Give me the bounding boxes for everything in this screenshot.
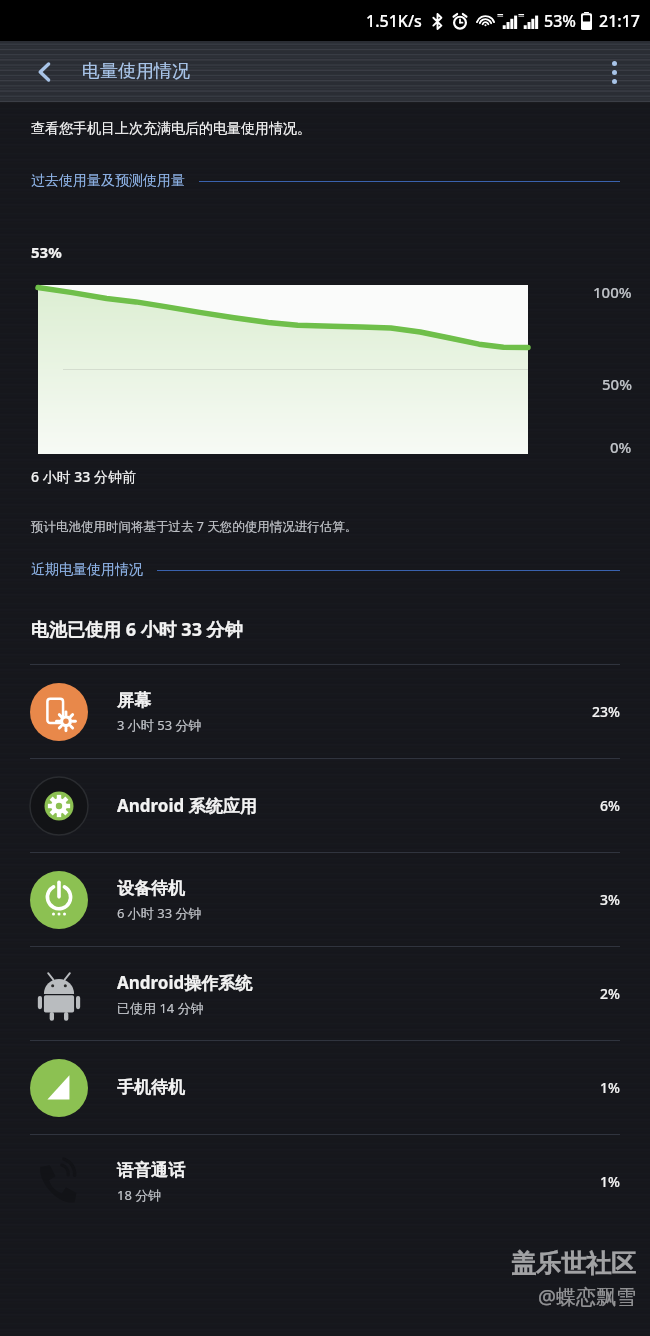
staticText: 2% xyxy=(600,984,620,1003)
staticText: 查看您手机目上次充满电后的电量使用情况。 xyxy=(31,120,311,138)
button[interactable]: 设备待机 xyxy=(0,853,650,946)
staticText: 设备待机 xyxy=(117,878,185,899)
staticText: 手机待机 xyxy=(117,1077,185,1098)
staticText: 电量使用情况 xyxy=(82,60,190,83)
staticText: 盖乐世社区 xyxy=(511,1248,636,1279)
staticText: Android 系统应用 xyxy=(117,794,257,817)
button[interactable]: Android 系统应用 xyxy=(0,759,650,852)
staticText: 3% xyxy=(600,890,620,909)
staticText: 1.51K/s xyxy=(366,10,422,32)
staticText: 预计电池使用时间将基于过去 7 天您的使用情况进行估算。 xyxy=(31,518,358,535)
staticText: 6% xyxy=(600,796,620,815)
staticText: 语音通话 xyxy=(117,1160,185,1181)
staticText: 21:17 xyxy=(599,10,640,32)
staticText: 近期电量使用情况 xyxy=(31,561,143,579)
staticText: 53% xyxy=(544,10,576,32)
button[interactable]: 语音通话 xyxy=(0,1135,650,1228)
button[interactable]: Back xyxy=(22,49,68,95)
staticText: 电池已使用 6 小时 33 分钟 xyxy=(31,617,243,642)
staticText: 3 小时 53 分钟 xyxy=(117,716,202,734)
staticText: 18 分钟 xyxy=(117,1186,162,1204)
staticText: 53% xyxy=(31,242,62,262)
staticText: 已使用 14 分钟 xyxy=(117,999,204,1017)
staticText: 1% xyxy=(600,1078,620,1097)
staticText: @蝶恋飘雪 xyxy=(538,1283,636,1310)
button[interactable]: 手机待机 xyxy=(0,1041,650,1134)
staticText: 100% xyxy=(593,282,632,302)
staticText: Android操作系统 xyxy=(117,971,253,994)
staticText: 6 小时 33 分钟前 xyxy=(31,467,136,486)
staticText: 1% xyxy=(600,1172,620,1191)
button[interactable]: More options xyxy=(592,50,636,94)
button[interactable]: 屏幕 xyxy=(0,665,650,758)
staticText: 6 小时 33 分钟 xyxy=(117,904,202,922)
staticText: 50% xyxy=(602,374,632,394)
staticText: 过去使用量及预测使用量 xyxy=(31,172,185,190)
button[interactable]: Android操作系统 xyxy=(0,947,650,1040)
staticText: 0% xyxy=(610,437,632,457)
staticText: 23% xyxy=(592,702,620,721)
staticText: 屏幕 xyxy=(117,690,151,711)
